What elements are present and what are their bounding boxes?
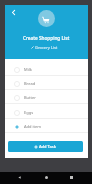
staticText: Butter xyxy=(24,95,36,100)
button[interactable]: Back xyxy=(14,172,24,182)
staticText: Grocery List xyxy=(35,45,58,50)
button[interactable]: Butter xyxy=(5,90,88,104)
button[interactable]: Back xyxy=(7,6,19,18)
staticText: Create Shopping List xyxy=(23,35,70,41)
button[interactable]: Milk xyxy=(5,62,88,76)
staticText: Add Task xyxy=(39,144,57,149)
staticText: Eggs xyxy=(24,110,34,115)
button[interactable]: Recent apps xyxy=(66,172,76,182)
button[interactable]: Bread xyxy=(5,76,88,90)
staticText: Add item xyxy=(24,124,41,129)
button[interactable]: Home xyxy=(41,172,51,182)
staticText: Milk xyxy=(24,67,32,72)
staticText: Bread xyxy=(24,81,36,86)
button[interactable]: Add item xyxy=(5,119,88,133)
button[interactable]: Add Task xyxy=(8,141,83,152)
button[interactable]: Eggs xyxy=(5,105,88,119)
